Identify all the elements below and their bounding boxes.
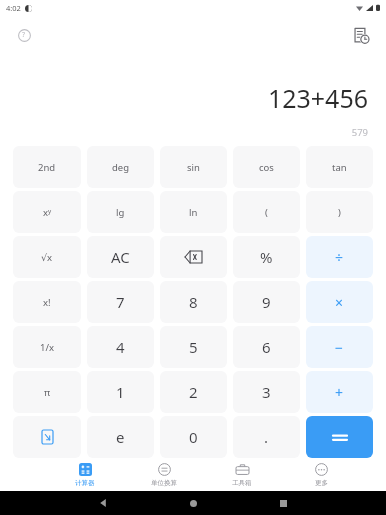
button[interactable]: 8 [160, 281, 227, 323]
button[interactable]: + [306, 371, 373, 413]
button[interactable]: 单位换算 [139, 458, 189, 491]
staticText: e [116, 427, 125, 447]
button[interactable]: − [306, 326, 373, 368]
staticText: xʸ [43, 206, 52, 219]
staticText: deg [112, 161, 130, 174]
staticText: % [260, 247, 273, 267]
button[interactable]: 1 [87, 371, 154, 413]
button[interactable]: Keyboard [13, 416, 81, 458]
staticText: 8 [189, 292, 198, 312]
staticText: − [335, 338, 344, 357]
staticText: 3 [262, 382, 271, 402]
staticText: 2 [189, 382, 198, 402]
button[interactable]: 更多 [296, 458, 346, 491]
staticText: 5 [189, 337, 198, 357]
button[interactable]: cos [233, 146, 300, 188]
button[interactable]: deg [87, 146, 154, 188]
staticText: × [335, 293, 344, 312]
button[interactable]: e [87, 416, 154, 458]
button[interactable]: 9 [233, 281, 300, 323]
button[interactable]: ) [306, 191, 373, 233]
button[interactable]: lg [87, 191, 154, 233]
button[interactable]: Delete [160, 236, 227, 278]
button[interactable]: 2 [160, 371, 227, 413]
staticText: 计算器 [75, 479, 95, 487]
button[interactable]: ln [160, 191, 227, 233]
staticText: 7 [116, 292, 125, 312]
button[interactable]: sin [160, 146, 227, 188]
button[interactable]: 工具箱 [217, 458, 267, 491]
staticText: . [264, 427, 269, 447]
button[interactable]: xʸ [13, 191, 81, 233]
staticText: 4:02 [6, 3, 21, 13]
staticText: π [44, 386, 51, 399]
button[interactable]: 1/x [13, 326, 81, 368]
staticText: 工具箱 [232, 479, 252, 487]
staticText: ln [189, 206, 198, 219]
staticText: 更多 [315, 479, 328, 487]
staticText: ? [22, 30, 26, 40]
staticText: 单位换算 [151, 479, 177, 487]
button[interactable]: x! [13, 281, 81, 323]
button[interactable]: Back [90, 491, 116, 515]
button[interactable]: 0 [160, 416, 227, 458]
button[interactable]: 3 [233, 371, 300, 413]
button[interactable]: Recents [270, 491, 296, 515]
button[interactable]: % [233, 236, 300, 278]
staticText: 9 [262, 292, 271, 312]
button[interactable]: Home [180, 491, 206, 515]
staticText: cos [259, 161, 274, 174]
button[interactable]: ÷ [306, 236, 373, 278]
staticText: 123+456 [267, 81, 368, 115]
button[interactable]: Help [10, 21, 38, 49]
button[interactable]: tan [306, 146, 373, 188]
button[interactable]: 6 [233, 326, 300, 368]
staticText: AC [111, 247, 130, 267]
staticText: 579 [351, 126, 368, 139]
staticText: sin [187, 161, 200, 174]
button[interactable]: History [346, 20, 376, 50]
button[interactable]: × [306, 281, 373, 323]
staticText: + [335, 383, 344, 402]
staticText: √x [41, 251, 53, 264]
staticText: 6 [262, 337, 271, 357]
staticText: 2nd [38, 161, 56, 174]
button[interactable]: 5 [160, 326, 227, 368]
button[interactable]: AC [87, 236, 154, 278]
staticText: lg [116, 206, 125, 219]
staticText: tan [332, 161, 347, 174]
staticText: 0 [189, 427, 198, 447]
staticText: x! [43, 296, 51, 309]
button[interactable]: . [233, 416, 300, 458]
button[interactable]: 7 [87, 281, 154, 323]
button[interactable] [306, 416, 373, 458]
button[interactable]: 4 [87, 326, 154, 368]
staticText: 4 [116, 337, 125, 357]
button[interactable]: 计算器 [60, 458, 110, 491]
staticText: ÷ [335, 248, 344, 267]
staticText: 1/x [40, 341, 54, 354]
staticText: 1 [116, 382, 125, 402]
button[interactable]: 2nd [13, 146, 81, 188]
staticText: ) [338, 206, 341, 219]
button[interactable]: π [13, 371, 81, 413]
staticText: ( [265, 206, 268, 219]
button[interactable]: √x [13, 236, 81, 278]
button[interactable]: ( [233, 191, 300, 233]
